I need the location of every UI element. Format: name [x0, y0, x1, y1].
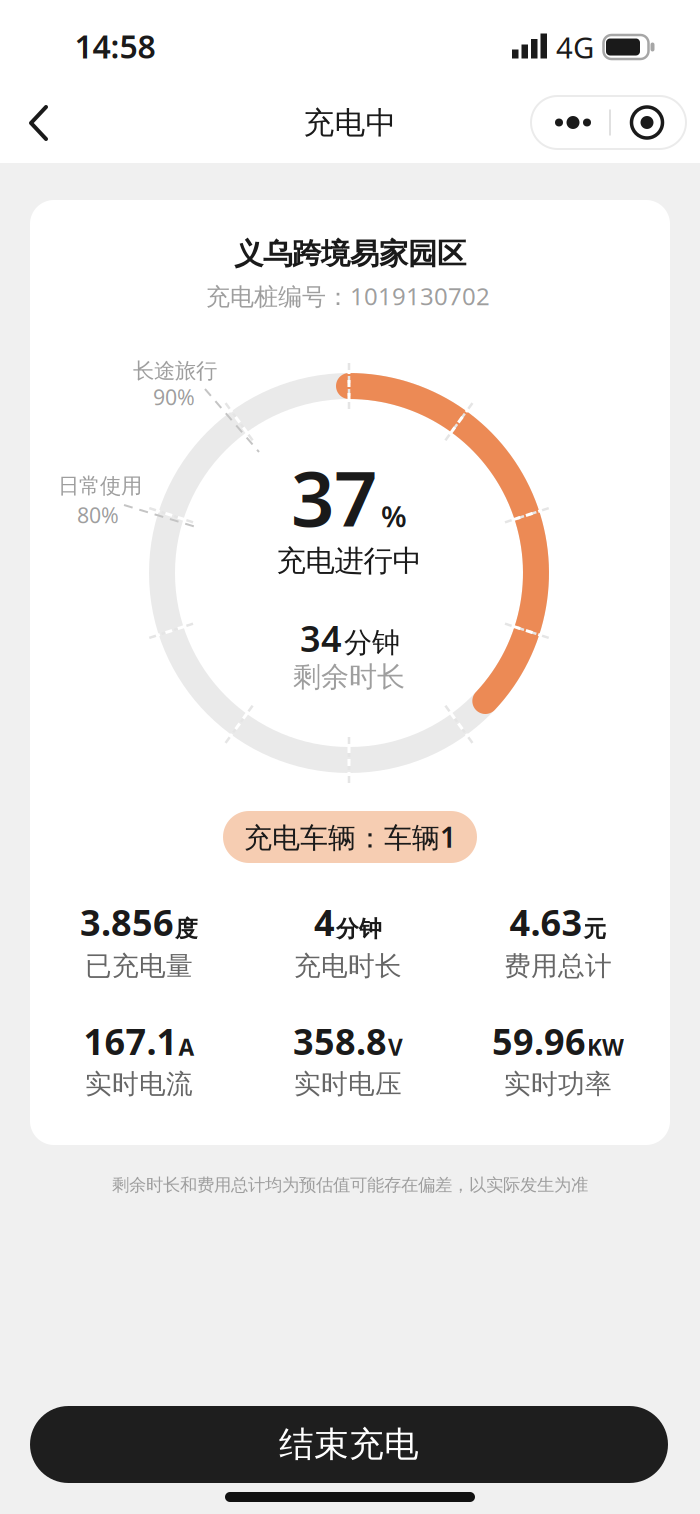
- staticText: 元: [583, 915, 606, 943]
- staticText: 实时功率: [504, 1068, 612, 1100]
- staticText: 80%: [77, 501, 119, 529]
- staticText: 充电车辆：车辆1: [244, 818, 456, 856]
- staticText: V: [388, 1032, 403, 1062]
- staticText: %: [381, 496, 407, 535]
- staticText: 59.96: [492, 1017, 586, 1065]
- staticText: 37: [291, 446, 377, 547]
- staticText: 费用总计: [504, 950, 612, 982]
- staticText: 358.8: [293, 1017, 387, 1065]
- staticText: 3.856: [80, 898, 174, 946]
- staticText: KW: [587, 1032, 624, 1062]
- staticText: 34: [300, 614, 342, 662]
- staticText: 结束充电: [279, 1423, 419, 1466]
- staticText: 已充电量: [85, 950, 193, 982]
- staticText: 90%: [153, 383, 195, 411]
- staticText: 4: [314, 898, 335, 946]
- staticText: 剩余时长: [293, 660, 405, 694]
- staticText: 167.1: [83, 1017, 177, 1065]
- staticText: 度: [175, 915, 198, 943]
- staticText: 义乌跨境易家园区: [234, 236, 466, 272]
- staticText: 4.63: [509, 898, 582, 946]
- staticText: 分钟: [344, 625, 400, 660]
- staticText: 充电时长: [294, 950, 402, 982]
- staticText: 4G: [556, 27, 594, 66]
- staticText: 剩余时长和费用总计均为预估值可能存在偏差，以实际发生为准: [112, 1174, 588, 1196]
- staticText: 实时电流: [85, 1068, 193, 1100]
- staticText: 分钟: [336, 915, 382, 943]
- staticText: 长途旅行: [133, 358, 217, 384]
- staticText: 充电桩编号：1019130702: [206, 280, 490, 312]
- staticText: A: [178, 1032, 194, 1062]
- staticText: 日常使用: [58, 473, 142, 499]
- staticText: 实时电压: [294, 1068, 402, 1100]
- staticText: 充电中: [303, 104, 396, 142]
- staticText: 充电进行中: [276, 543, 421, 579]
- staticText: 14:58: [74, 25, 155, 67]
